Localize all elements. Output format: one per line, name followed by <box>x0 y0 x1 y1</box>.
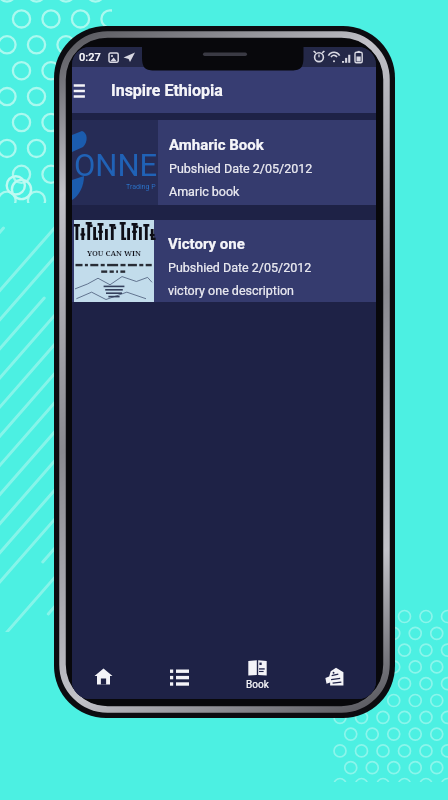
staticText: YOU CAN WIN <box>87 248 141 258</box>
staticText: Trading P <box>126 183 156 191</box>
button[interactable]: ONNE <box>72 120 376 205</box>
staticText: Book <box>246 679 269 691</box>
button[interactable]: Home <box>72 654 137 699</box>
staticText: Pubshied Date 2/05/2012 <box>168 260 312 275</box>
button[interactable]: Open navigation menu <box>72 77 92 103</box>
button[interactable]: List <box>145 654 213 699</box>
staticText: Inspire Ethiopia <box>111 81 223 100</box>
staticText: Pubshied Date 2/05/2012 <box>169 161 313 176</box>
staticText: victory one description <box>168 283 294 298</box>
button[interactable]: Book <box>223 654 291 699</box>
button[interactable]: YOU CAN WIN <box>72 220 376 302</box>
button[interactable]: Store <box>300 654 368 699</box>
staticText: Amharic Book <box>169 136 264 154</box>
staticText: Amaric book <box>169 184 240 199</box>
staticText: 0:27 <box>79 51 101 64</box>
staticText: ONNE <box>74 147 158 183</box>
staticText: Victory one <box>168 235 245 253</box>
